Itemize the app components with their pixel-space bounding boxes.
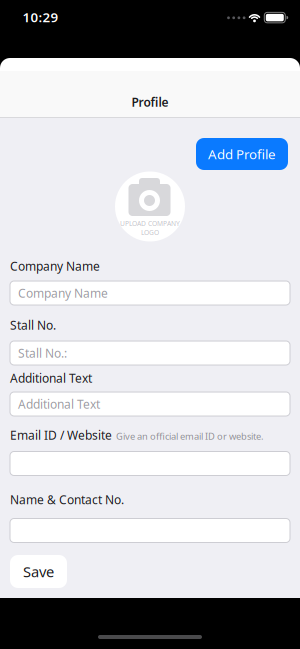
staticText: UPLOAD COMPANY: [120, 219, 180, 228]
staticText: Save: [23, 562, 54, 581]
staticText: LOGO: [141, 228, 159, 237]
button[interactable]: Stall No.:: [10, 341, 290, 365]
button[interactable]: Save: [10, 555, 67, 588]
staticText: Company Name: [18, 285, 108, 301]
staticText: Additional Text: [18, 396, 100, 412]
staticText: Profile: [131, 94, 168, 110]
staticText: Email ID / Website: [10, 427, 112, 443]
button[interactable]: Upload company logo: [115, 171, 185, 241]
staticText: Name & Contact No.: [10, 491, 124, 507]
staticText: Additional Text: [10, 370, 92, 386]
button[interactable]: Text field: [10, 518, 290, 542]
staticText: Add Profile: [208, 145, 276, 163]
staticText: Stall No.: [10, 317, 56, 333]
button[interactable]: Company Name: [10, 281, 290, 305]
staticText: Give an official email ID or website.: [116, 430, 264, 442]
staticText: Stall No.:: [18, 345, 67, 361]
button[interactable]: Additional Text: [10, 392, 290, 416]
button[interactable]: Text field: [10, 451, 290, 475]
button[interactable]: Add Profile: [196, 138, 288, 170]
staticText: 10:29: [22, 8, 58, 26]
staticText: Company Name: [10, 258, 100, 274]
